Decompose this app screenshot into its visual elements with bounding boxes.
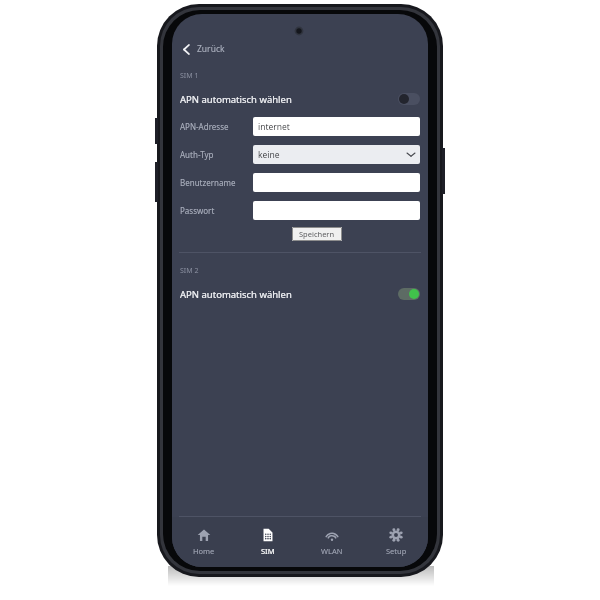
staticText: keine [258, 149, 280, 161]
button[interactable] [253, 201, 420, 220]
staticText: APN-Adresse [180, 121, 229, 132]
staticText: Passwort [180, 205, 215, 216]
button[interactable]: Home [172, 524, 236, 560]
staticText: APN automatisch wählen [180, 93, 292, 106]
staticText: Zurück [197, 43, 225, 55]
button[interactable]: keine [253, 145, 420, 164]
staticText: Benutzername [180, 177, 236, 188]
button[interactable]: Setup [364, 524, 428, 560]
other: Home [197, 528, 211, 542]
staticText: SIM 1 [180, 71, 199, 81]
button[interactable]: APN automatisch wählen [172, 88, 428, 110]
staticText: SIM [261, 546, 275, 556]
staticText: SIM 2 [180, 266, 199, 276]
button[interactable]: WLAN [300, 524, 364, 560]
button[interactable]: Speichern [292, 227, 342, 241]
other: SIM [261, 528, 275, 542]
other: WLAN [325, 528, 339, 542]
button[interactable]: internet [253, 117, 420, 136]
staticText: Setup [386, 546, 407, 556]
staticText: Home [193, 546, 215, 556]
button[interactable]: Zurück [178, 37, 229, 61]
other: Setup [389, 528, 403, 542]
staticText: internet [258, 121, 290, 133]
button[interactable]: APN automatisch wählen [172, 283, 428, 305]
staticText: Auth-Typ [180, 149, 214, 160]
staticText: Speichern [299, 229, 335, 239]
button[interactable]: SIM [236, 524, 300, 560]
staticText: APN automatisch wählen [180, 288, 292, 301]
button[interactable] [253, 173, 420, 192]
staticText: WLAN [321, 546, 343, 556]
